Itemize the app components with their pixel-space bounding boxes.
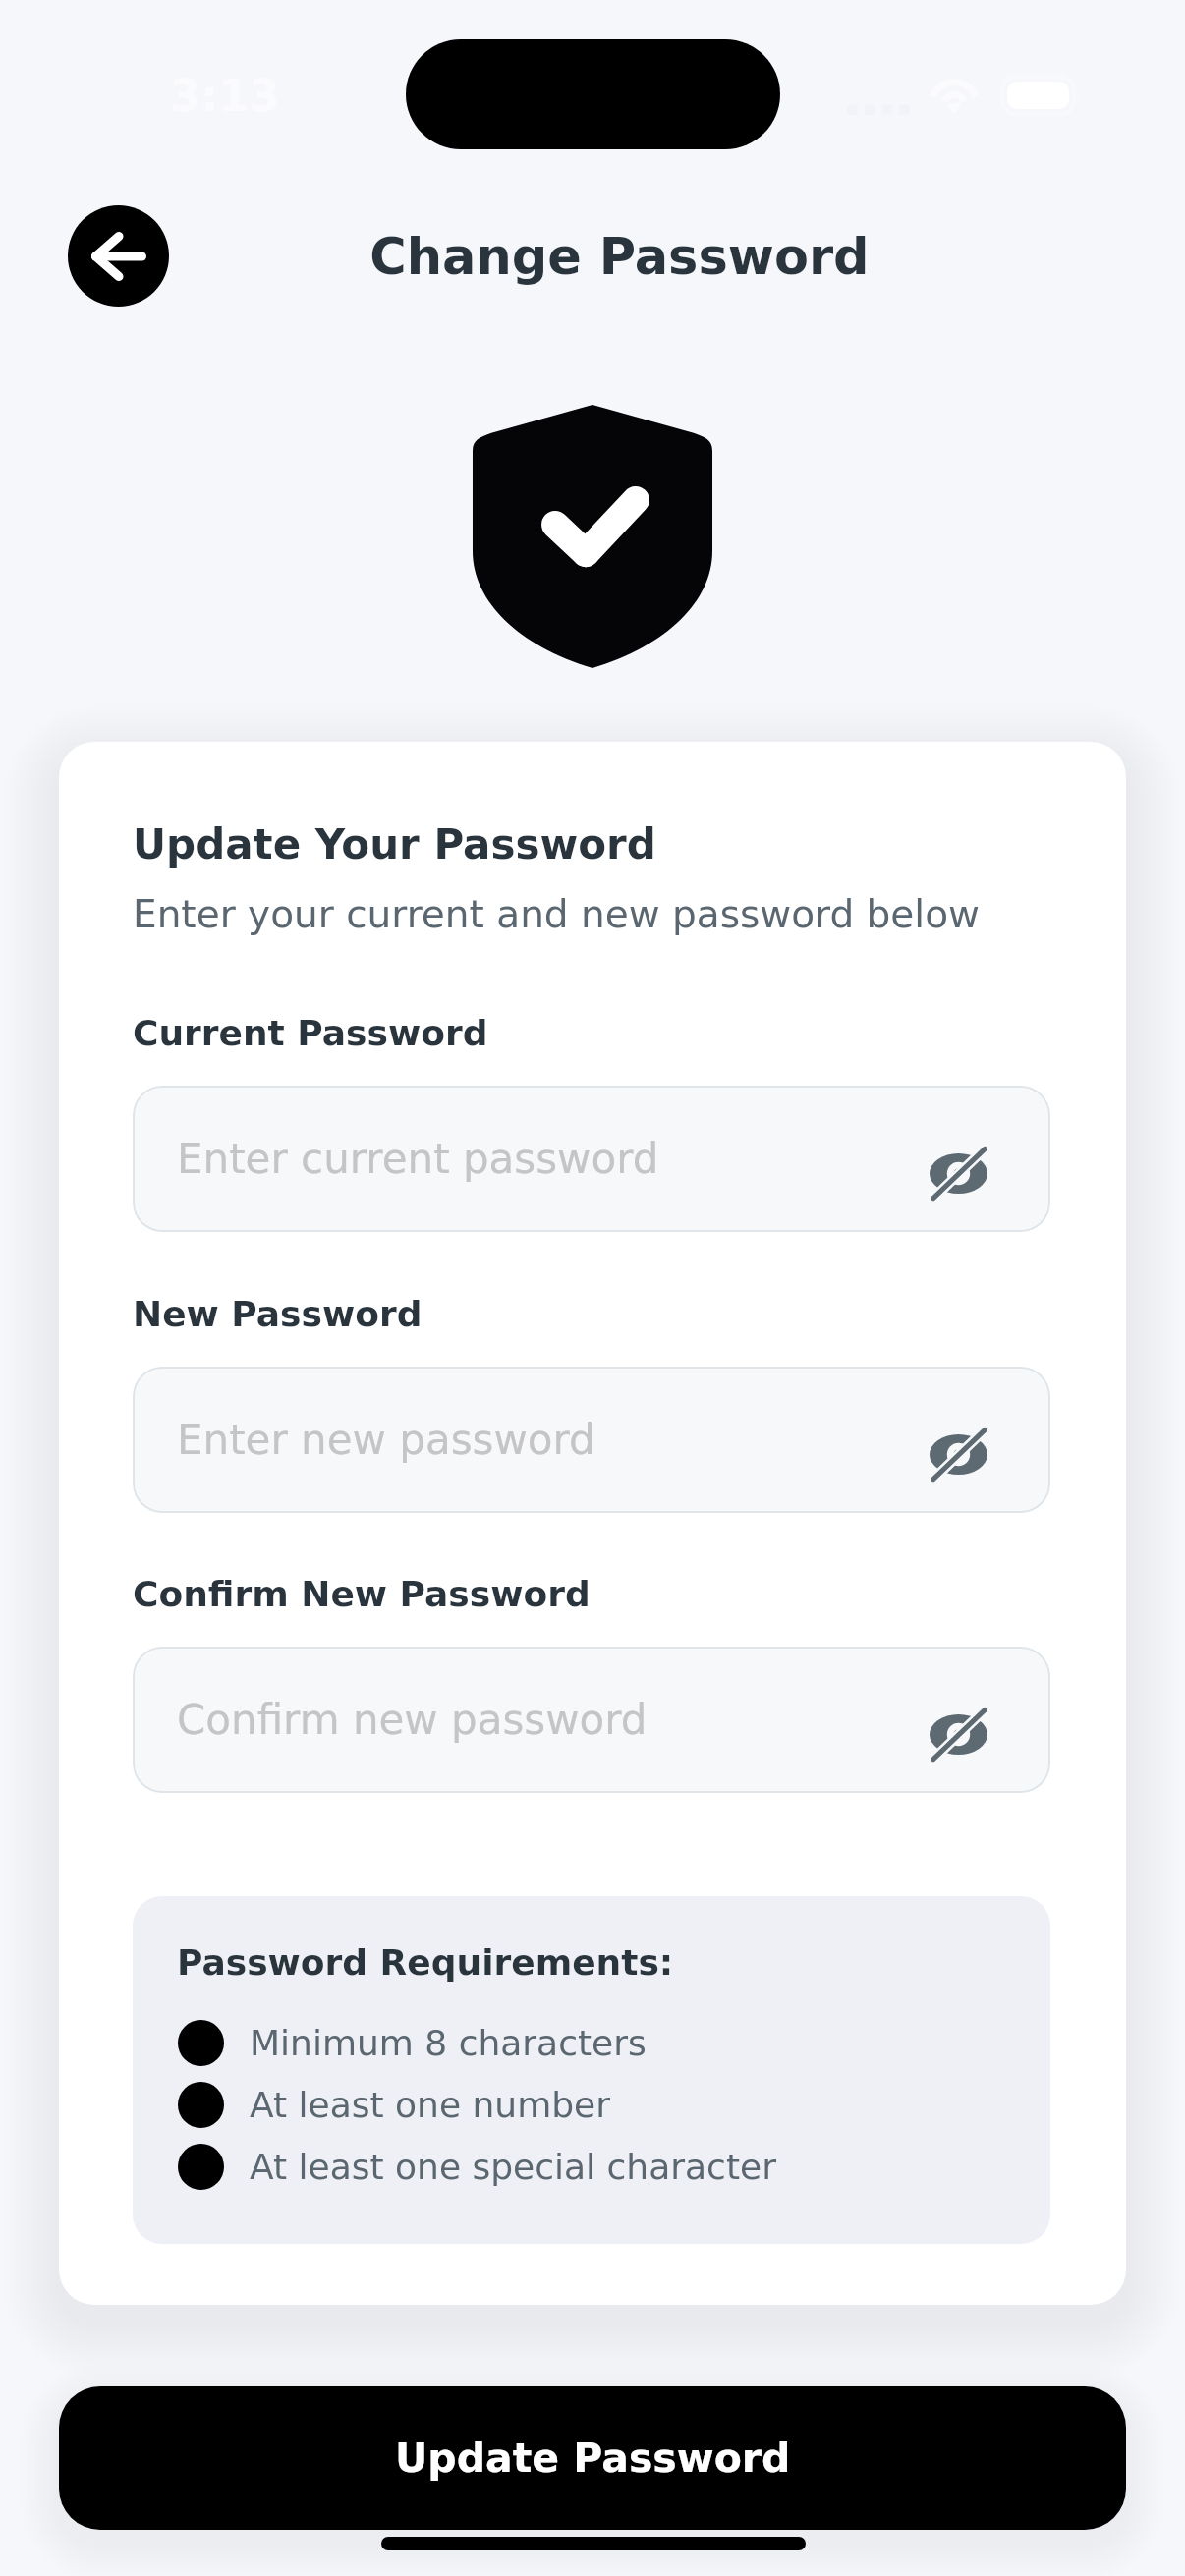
staticText: Enter your current and new password belo… [133,892,980,936]
staticText: At least one special character [250,2147,776,2188]
staticText: Update Password [395,2435,791,2482]
button[interactable]: Enter current password [133,1086,1050,1232]
staticText: Minimum 8 characters [250,2023,647,2064]
button[interactable]: Show password [910,1689,1007,1780]
staticText: Confirm New Password [133,1574,591,1615]
staticText: Enter current password [177,1135,659,1183]
staticText: At least one number [250,2085,611,2126]
staticText: Password Requirements: [177,1942,674,1984]
button[interactable]: Show password [910,1128,1007,1219]
staticText: Change Password [369,228,870,286]
staticText: Confirm new password [177,1696,648,1744]
button[interactable]: Confirm new password [133,1647,1050,1793]
staticText: Update Your Password [133,820,656,868]
staticText: New Password [133,1294,423,1335]
button[interactable]: Update Password [59,2386,1126,2530]
staticText: Enter new password [177,1416,595,1464]
button[interactable]: Show password [910,1409,1007,1500]
staticText: Current Password [133,1013,488,1054]
button[interactable]: Back [68,205,169,307]
button[interactable]: Enter new password [133,1367,1050,1513]
